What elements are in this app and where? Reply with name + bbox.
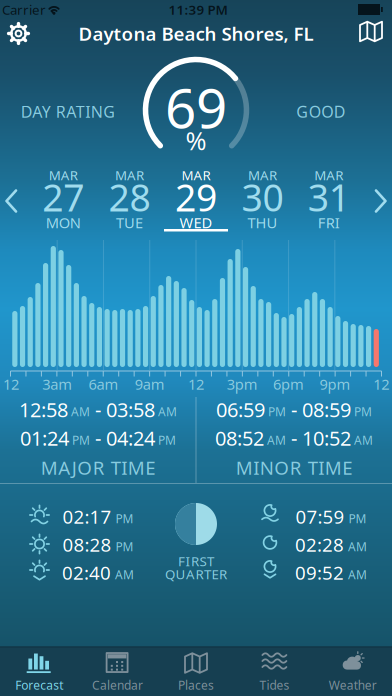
staticText: Weather	[329, 677, 377, 693]
staticText: 12	[3, 374, 19, 394]
button[interactable]: MAR	[164, 166, 228, 228]
staticText: MINOR TIME	[236, 455, 352, 480]
staticText: 08:52	[215, 425, 264, 451]
staticText: 02:40	[62, 560, 111, 585]
button[interactable]: MAR	[230, 166, 294, 228]
staticText: 03:58	[106, 396, 155, 423]
staticText: 07:59	[295, 504, 344, 529]
staticText: FRI	[318, 213, 340, 232]
staticText: 04:24	[106, 425, 155, 451]
staticText: 31	[308, 172, 350, 222]
button[interactable]: Places	[157, 647, 235, 695]
staticText: 30	[241, 172, 283, 222]
staticText: QUARTER	[165, 565, 227, 583]
staticText: MAR	[181, 166, 210, 184]
button[interactable]: Next day	[373, 189, 387, 213]
staticText: DAY RATING	[21, 101, 115, 122]
staticText: MAR	[248, 166, 277, 184]
staticText: %	[185, 124, 206, 157]
button[interactable]: Map	[359, 20, 383, 42]
staticText: 3am	[42, 374, 72, 394]
staticText: 01:24	[20, 425, 69, 451]
staticText: 06:59	[216, 396, 265, 423]
staticText: -	[286, 425, 302, 451]
staticText: 12	[373, 374, 389, 394]
button[interactable]: Forecast	[0, 647, 78, 695]
staticText: 69	[165, 71, 227, 143]
staticText: Tides	[259, 677, 289, 693]
staticText: -	[90, 425, 106, 451]
staticText: GOOD	[296, 101, 346, 122]
staticText: PM	[348, 510, 366, 526]
staticText: AM	[348, 566, 367, 582]
staticText: THU	[247, 213, 277, 232]
staticText: 6am	[88, 374, 118, 394]
staticText: 28	[109, 172, 151, 222]
staticText: 08:59	[302, 396, 351, 423]
staticText: MAR	[49, 166, 78, 184]
staticText: 6pm	[273, 374, 304, 394]
staticText: 10:52	[302, 425, 351, 451]
button[interactable]: MAR	[297, 166, 361, 228]
staticText: TUE	[116, 213, 143, 232]
staticText: AM	[354, 432, 373, 448]
button[interactable]: Settings	[5, 20, 31, 46]
staticText: MAR	[115, 166, 144, 184]
button[interactable]: MAR	[98, 166, 162, 228]
staticText: Carrier	[2, 1, 46, 18]
staticText: 11:39 PM	[168, 1, 227, 18]
staticText: PM	[72, 432, 90, 448]
staticText: 12:58	[19, 396, 68, 423]
staticText: WED	[179, 213, 212, 232]
button[interactable]: MAR	[31, 166, 95, 228]
staticText: 29	[175, 172, 217, 222]
staticText: 02:17	[62, 504, 111, 529]
staticText: Forecast	[15, 677, 63, 693]
staticText: -	[286, 396, 302, 423]
staticText: 02:28	[295, 532, 344, 557]
staticText: FIRST	[178, 552, 214, 570]
staticText: PM	[115, 510, 133, 526]
staticText: MAJOR TIME	[41, 455, 155, 480]
staticText: 09:52	[295, 560, 344, 585]
button[interactable]: Weather	[314, 647, 392, 695]
staticText: Daytona Beach Shores, FL	[78, 21, 313, 46]
staticText: AM	[158, 403, 177, 419]
button[interactable]: Previous day	[4, 189, 18, 213]
staticText: PM	[115, 538, 133, 554]
staticText: MON	[46, 213, 81, 232]
staticText: AM	[348, 538, 367, 554]
staticText: PM	[158, 432, 176, 448]
button[interactable]: Calendar	[79, 647, 157, 695]
staticText: 3pm	[227, 374, 258, 394]
staticText: 12	[188, 374, 204, 394]
staticText: PM	[354, 403, 372, 419]
staticText: 9pm	[319, 374, 350, 394]
staticText: MAR	[314, 166, 343, 184]
staticText: Places	[178, 677, 214, 693]
staticText: 08:28	[62, 532, 111, 557]
staticText: 9am	[135, 374, 165, 394]
staticText: AM	[115, 566, 134, 582]
staticText: 27	[42, 172, 84, 222]
staticText: Calendar	[92, 677, 143, 693]
button[interactable]: Tides	[235, 647, 313, 695]
staticText: PM	[268, 403, 286, 419]
staticText: AM	[71, 403, 90, 419]
staticText: -	[90, 396, 106, 423]
staticText: AM	[267, 432, 286, 448]
